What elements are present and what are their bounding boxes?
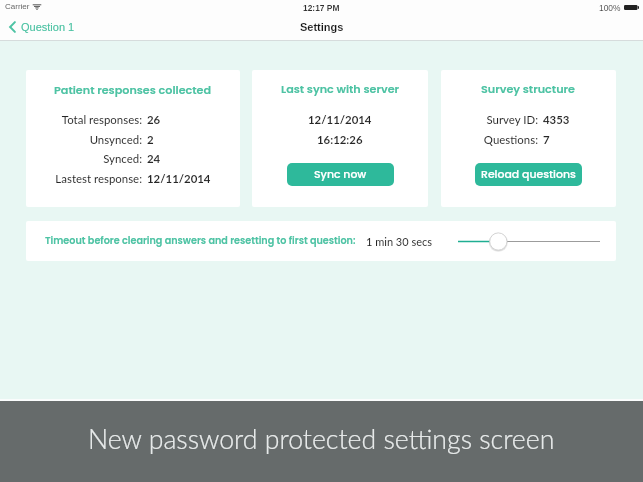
button[interactable]: Back to Question 1: [0, 15, 81, 38]
staticText: Carrier: [5, 2, 30, 11]
button[interactable]: Sync now: [287, 163, 394, 186]
staticText: 4353: [543, 113, 570, 127]
staticText: 12/11/2014: [147, 172, 211, 186]
staticText: Question 1: [21, 21, 75, 33]
staticText: 12:17 PM: [303, 3, 340, 12]
staticText: 7: [543, 133, 550, 147]
staticText: 26: [147, 113, 161, 127]
staticText: Timeout before clearing answers and rese…: [45, 234, 356, 248]
staticText: New password protected settings screen: [88, 423, 555, 455]
staticText: 100%: [599, 3, 621, 12]
staticText: Questions:: [483, 133, 538, 147]
staticText: 2: [147, 133, 154, 147]
staticText: Synced:: [103, 152, 142, 166]
button[interactable]: Reload questions: [475, 163, 582, 186]
staticText: Settings: [300, 21, 344, 33]
staticText: Survey structure: [481, 81, 576, 97]
staticText: Sync now: [314, 167, 367, 182]
staticText: Survey ID:: [486, 113, 538, 127]
button[interactable]: Timeout slider: [450, 221, 608, 261]
staticText: 24: [147, 152, 161, 166]
staticText: 1 min 30 secs: [366, 235, 433, 248]
staticText: 16:12:26: [317, 133, 363, 147]
staticText: Patient responses collected: [54, 82, 212, 98]
staticText: Lastest response:: [55, 172, 142, 186]
staticText: Total responses:: [61, 113, 142, 127]
staticText: Unsynced:: [89, 133, 142, 147]
staticText: Last sync with server: [281, 81, 400, 97]
staticText: Reload questions: [481, 167, 576, 182]
staticText: 12/11/2014: [308, 113, 372, 127]
